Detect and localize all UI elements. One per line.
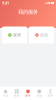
staticText: 我的 — [47, 94, 53, 97]
button[interactable]: 发现 — [34, 86, 45, 100]
button[interactable]: 我的 — [45, 86, 56, 100]
staticText: 生活 — [40, 32, 48, 37]
staticText: 发现 — [36, 94, 42, 97]
staticText: 9:41 — [2, 0, 9, 6]
button[interactable]: 健康 — [2, 26, 27, 43]
staticText: 服务 — [25, 94, 31, 97]
button[interactable]: 首页 — [0, 86, 11, 100]
staticText: 我的服务 — [18, 9, 38, 15]
button[interactable]: 生活 — [29, 26, 54, 43]
button[interactable]: 商城 — [11, 86, 22, 100]
button[interactable]: 服务 — [22, 86, 34, 100]
staticText: 首页 — [3, 94, 9, 97]
staticText: 健康 — [13, 32, 21, 37]
staticText: 商城 — [14, 94, 20, 97]
